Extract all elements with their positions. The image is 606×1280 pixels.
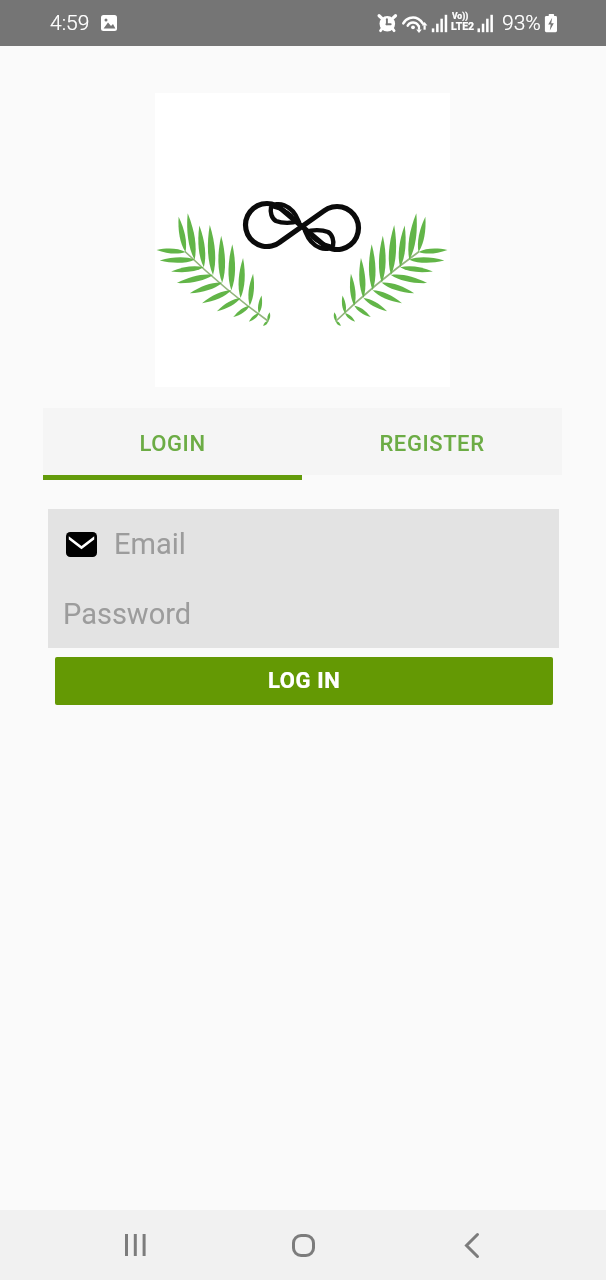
button[interactable]: REGISTER <box>302 408 562 475</box>
staticText: Vo)) <box>452 11 469 21</box>
button[interactable]: Home <box>268 1210 338 1280</box>
staticText: LOGIN <box>139 431 206 457</box>
button[interactable]: LOG IN <box>55 657 553 705</box>
button[interactable]: Email <box>48 509 559 579</box>
staticText: REGISTER <box>379 431 485 457</box>
button[interactable]: Password <box>48 579 559 648</box>
staticText: Password <box>63 597 192 631</box>
staticText: LOG IN <box>268 668 341 694</box>
button[interactable]: Recent apps <box>100 1210 170 1280</box>
button[interactable]: Back <box>437 1210 507 1280</box>
staticText: Email <box>114 527 186 561</box>
staticText: 93% <box>502 11 541 36</box>
staticText: 4:59 <box>50 11 90 36</box>
staticText: LTE2 <box>451 20 475 32</box>
button[interactable]: LOGIN <box>43 408 302 475</box>
